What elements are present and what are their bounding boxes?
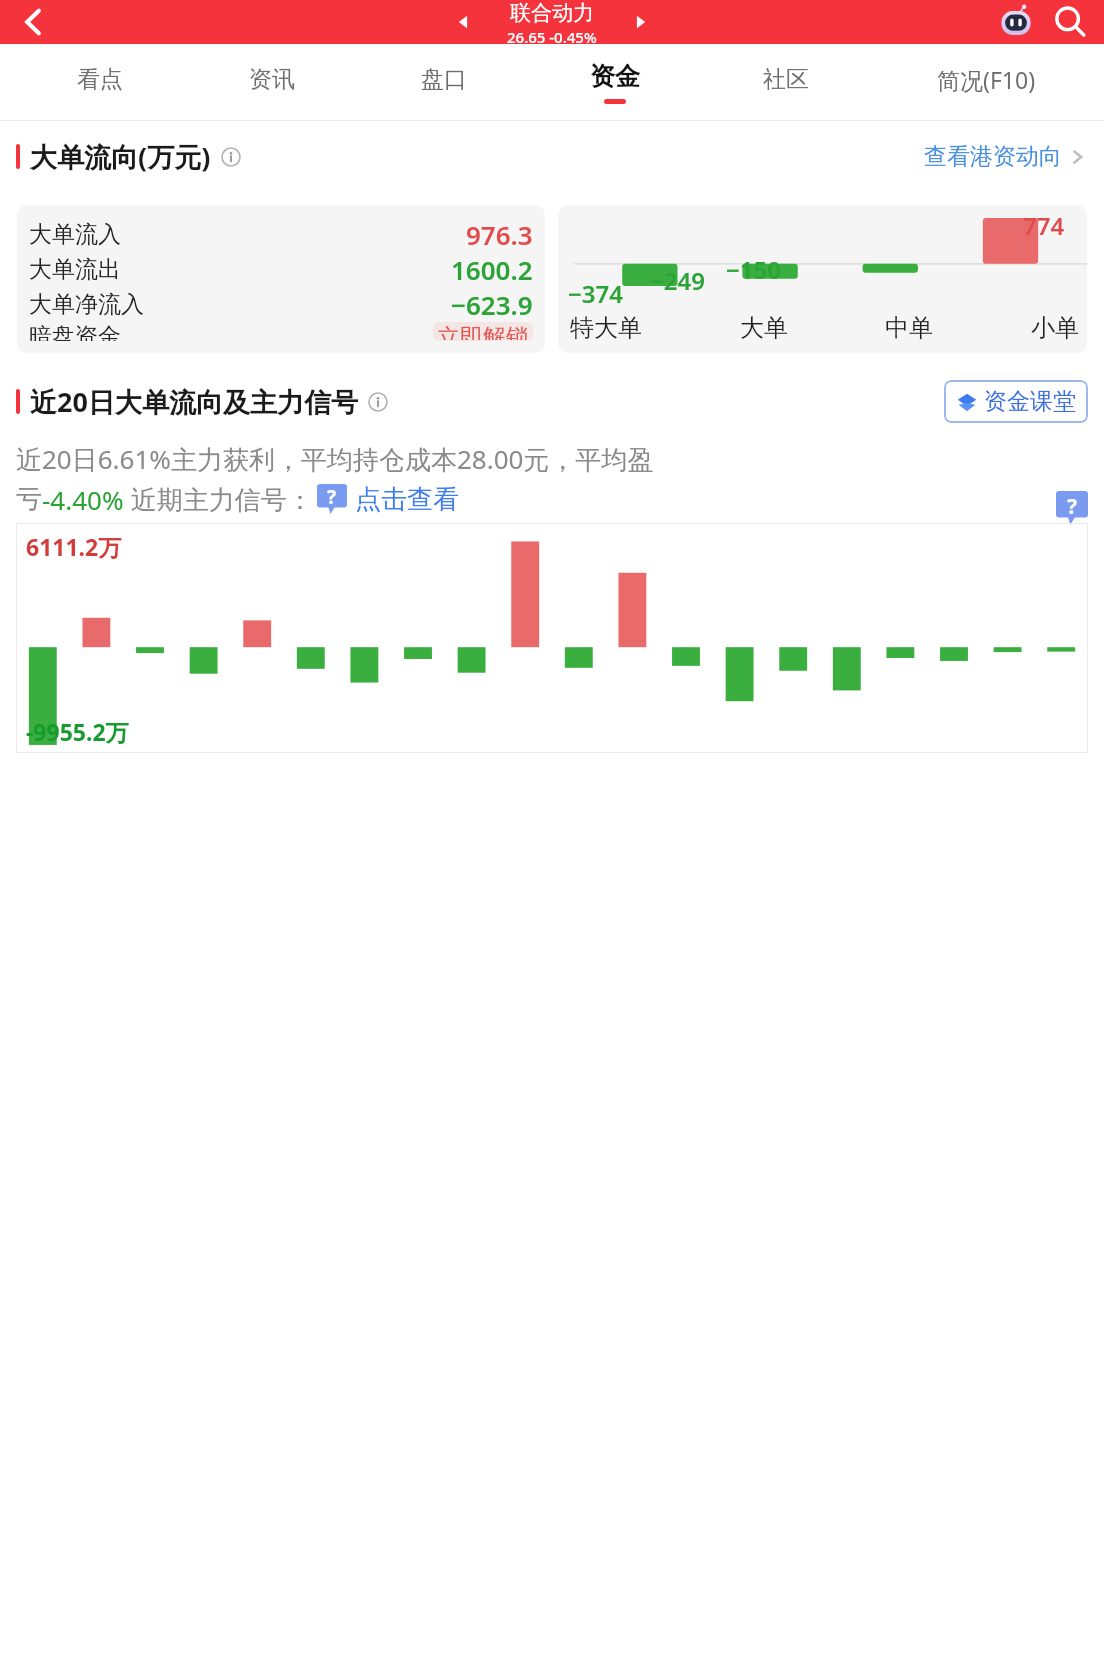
staticText: ? [1067, 492, 1078, 521]
button[interactable]: 资金 [529, 44, 700, 121]
button[interactable]: Info [368, 392, 388, 412]
staticText: 资金 [590, 61, 640, 92]
staticText: 近20日6.61%主力获利，平均持仓成本28.00元，平均盈 [16, 441, 654, 477]
staticText: 976.3 [466, 217, 533, 252]
staticText: −249 [650, 264, 706, 297]
staticText: 大单净流入 [29, 290, 144, 319]
staticText: 1600.2 [451, 252, 533, 287]
staticText: 大单 [740, 313, 788, 343]
button[interactable]: 社区 [700, 44, 871, 121]
button[interactable]: Help [317, 484, 347, 514]
button[interactable]: 774 [558, 205, 1087, 353]
staticText: 暗盘资金 [29, 322, 121, 341]
button[interactable]: 查看港资动向 [924, 142, 1088, 171]
staticText: 小单 [1031, 313, 1079, 343]
button[interactable]: 简况(F10) [871, 44, 1102, 121]
button[interactable]: 大单流入 [17, 205, 545, 353]
staticText: 联合动力 [510, 0, 594, 26]
staticText: 查看港资动向 [924, 142, 1062, 171]
staticText: 盘口 [421, 65, 467, 94]
staticText: −623.9 [451, 287, 533, 322]
button[interactable]: 资金课堂 [944, 380, 1088, 423]
staticText: 大单流向(万元) [30, 138, 211, 175]
staticText: 近20日大单流向及主力信号 [30, 383, 358, 420]
staticText: 立即解锁 [437, 323, 529, 340]
staticText: −374 [568, 277, 624, 310]
button[interactable]: 6111.2万 [16, 523, 1088, 753]
button[interactable]: Next stock [627, 9, 653, 35]
button[interactable]: 看点 [14, 44, 186, 121]
button[interactable]: 点击查看 [355, 483, 459, 516]
staticText: -9955.2万 [26, 716, 129, 747]
staticText: 26.65 -0.45% [507, 27, 597, 44]
button[interactable]: 立即解锁 [433, 322, 533, 341]
button[interactable]: 盘口 [358, 44, 529, 121]
button[interactable]: 资讯 [186, 44, 358, 121]
staticText: 774 [1023, 209, 1065, 242]
staticText: 资讯 [249, 65, 295, 94]
staticText: -4.40% [42, 482, 124, 517]
staticText: 亏 [16, 483, 42, 516]
staticText: −150 [726, 253, 782, 286]
staticText: 大单流入 [29, 220, 121, 249]
staticText: 看点 [77, 65, 123, 94]
staticText: 大单流出 [29, 255, 121, 284]
staticText: 中单 [885, 313, 933, 343]
button[interactable]: Chart help [1056, 491, 1088, 525]
staticText: 6111.2万 [26, 531, 122, 562]
button[interactable]: Search [1050, 2, 1090, 42]
staticText: 特大单 [570, 313, 642, 343]
staticText: 简况(F10) [937, 64, 1036, 95]
button[interactable]: Previous stock [451, 9, 477, 35]
button[interactable]: AI assistant [994, 0, 1038, 44]
staticText: 社区 [763, 65, 809, 94]
button[interactable]: Back [14, 2, 54, 42]
staticText: ? [327, 484, 337, 510]
staticText: 资金课堂 [984, 387, 1076, 416]
button[interactable]: Info [221, 147, 241, 167]
staticText: 近期主力信号： [124, 481, 313, 517]
